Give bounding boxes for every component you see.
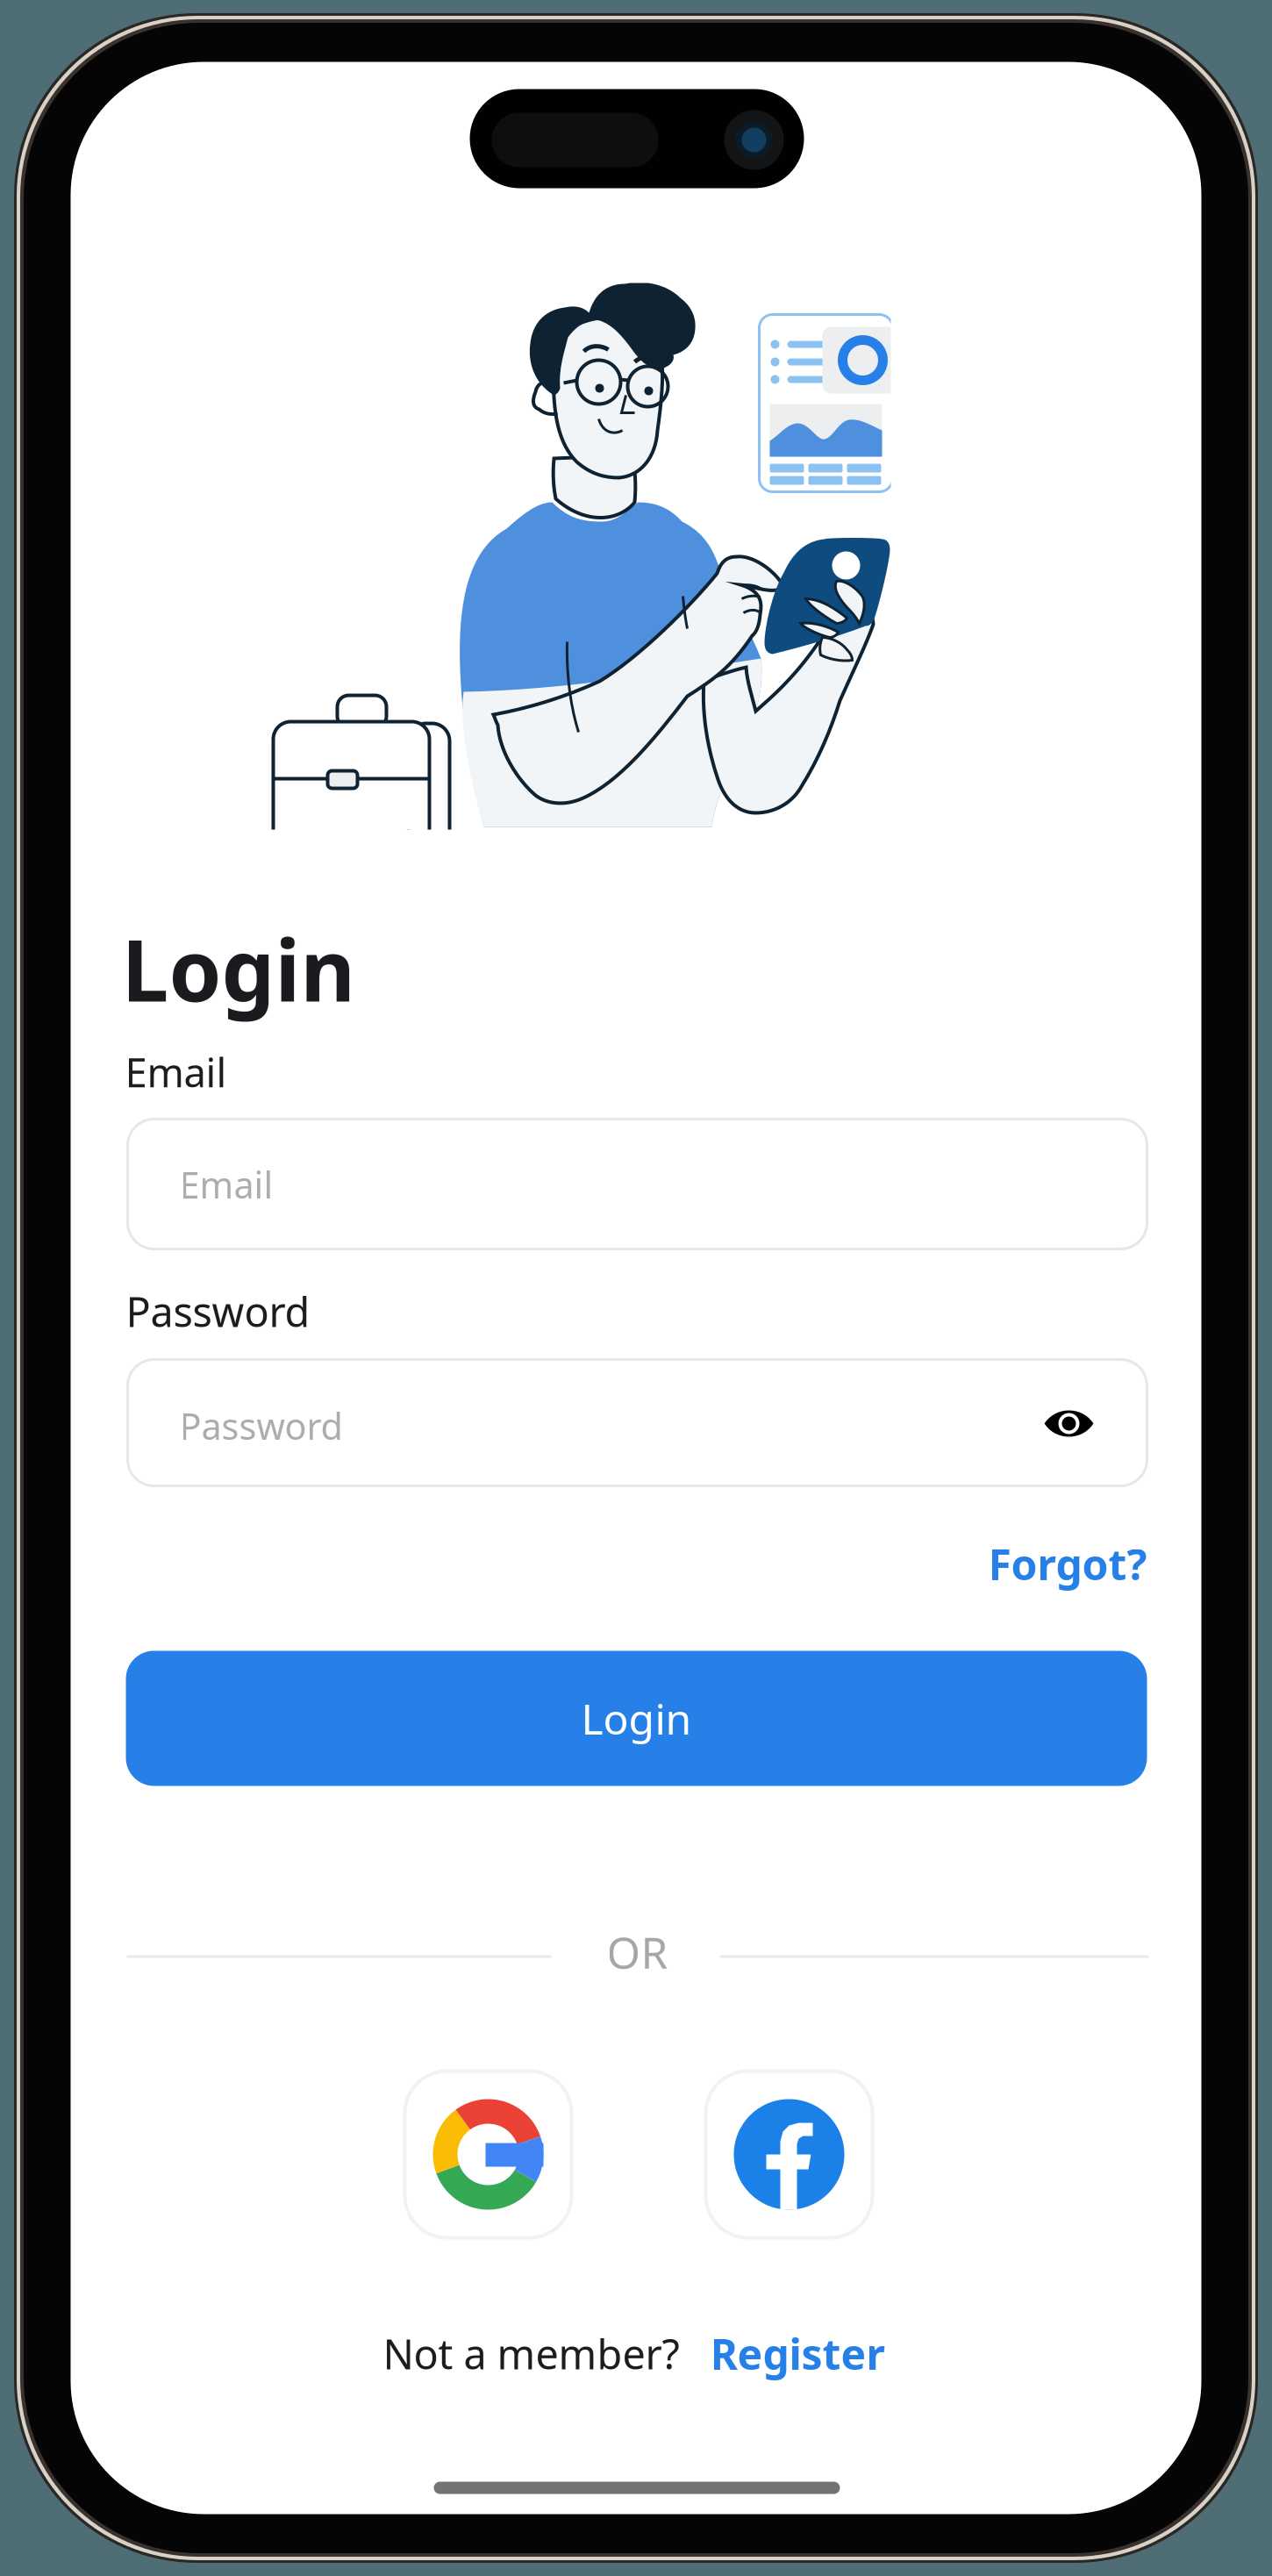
button[interactable]: Login (126, 1651, 1147, 1786)
button[interactable]: Not a member? (366, 2325, 901, 2383)
staticText: Login (581, 1690, 692, 1746)
staticText: Forgot? (988, 1536, 1147, 1592)
staticText: Email (125, 1045, 227, 1098)
staticText: Password (126, 1284, 310, 1338)
staticText: Not a member? (383, 2326, 679, 2381)
staticText: Register (710, 2326, 885, 2381)
button[interactable]: Continue with Facebook (706, 2071, 872, 2238)
staticText: Email (179, 1160, 273, 1209)
button[interactable]: Continue with Google (405, 2071, 572, 2238)
staticText: OR (607, 1923, 668, 1980)
button[interactable]: Forgot? (882, 1536, 1147, 1606)
button[interactable]: Show password (1018, 1381, 1120, 1466)
staticText: Login (121, 913, 355, 1025)
staticText: Password (179, 1402, 343, 1450)
